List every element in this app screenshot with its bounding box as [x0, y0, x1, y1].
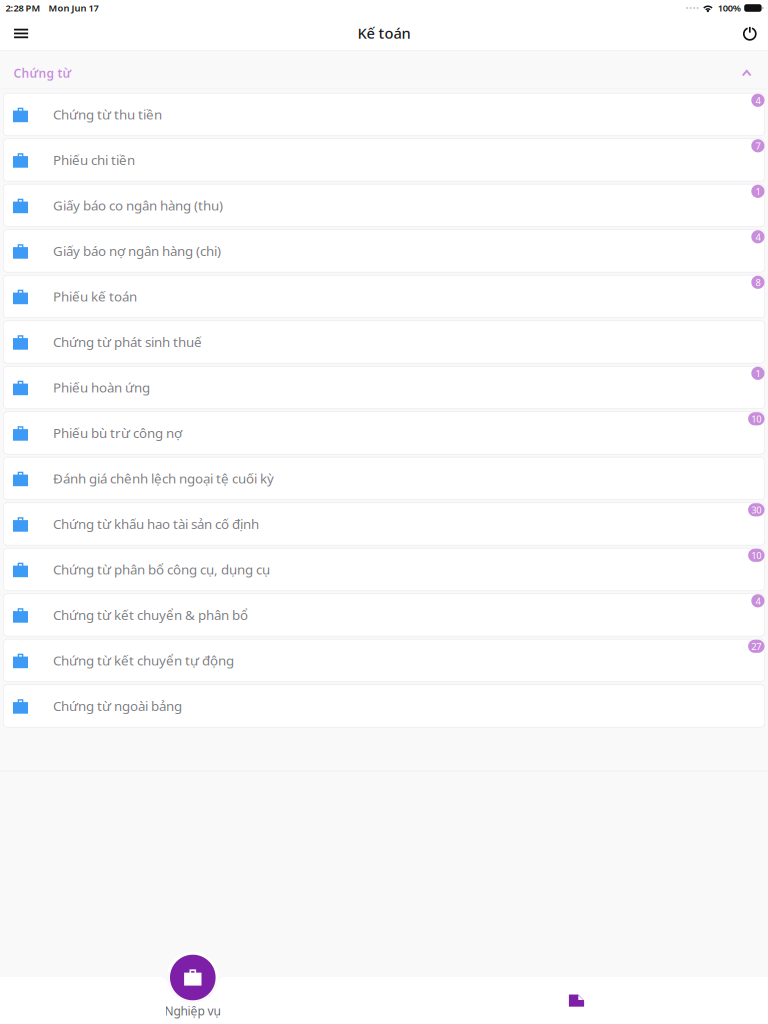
staticText: 4	[755, 595, 760, 607]
staticText: 10	[751, 413, 761, 425]
button[interactable]: Power	[733, 16, 767, 50]
staticText: 4	[755, 94, 760, 106]
button[interactable]: Chứng từ	[0, 51, 768, 89]
staticText: Phiếu hoàn ứng	[53, 379, 150, 396]
button[interactable]: Chứng từ phát sinh thuế	[3, 321, 764, 363]
button[interactable]: Đánh giá chênh lệch ngoại tệ cuối kỳ	[3, 457, 764, 500]
staticText: Kế toán	[357, 23, 410, 43]
staticText: Giấy báo nợ ngân hàng (chi)	[53, 242, 221, 260]
button[interactable]: Tài liệu	[385, 956, 768, 1024]
staticText: 30	[751, 504, 761, 516]
button[interactable]: Phiếu chi tiền	[3, 139, 764, 181]
button[interactable]: Nghiệp vụ	[170, 955, 216, 1000]
button[interactable]: Chứng từ thu tiền	[3, 93, 764, 136]
staticText: Đánh giá chênh lệch ngoại tệ cuối kỳ	[53, 470, 274, 487]
staticText: Chứng từ thu tiền	[53, 106, 162, 123]
button[interactable]: Chứng từ phân bổ công cụ, dụng cụ	[3, 548, 764, 591]
button[interactable]: Chứng từ ngoài bảng	[3, 685, 764, 727]
staticText: Chứng từ kết chuyển & phân bổ	[53, 606, 248, 624]
button[interactable]: Menu	[4, 16, 38, 50]
staticText: 1	[755, 185, 760, 197]
button[interactable]: Phiếu kế toán	[3, 275, 764, 318]
staticText: 100%	[718, 2, 741, 14]
staticText: 1	[755, 367, 760, 379]
staticText: Phiếu bù trừ công nợ	[53, 424, 182, 442]
button[interactable]: Chứng từ kết chuyển tự động	[3, 639, 764, 682]
staticText: Chứng từ phát sinh thuế	[53, 333, 202, 351]
staticText: Giấy báo co ngân hàng (thu)	[53, 197, 223, 214]
staticText: 7	[755, 140, 760, 152]
staticText: Chứng từ ngoài bảng	[53, 697, 182, 715]
staticText: 27	[751, 640, 761, 652]
staticText: Mon Jun 17	[48, 2, 98, 14]
button[interactable]: Giấy báo co ngân hàng (thu)	[3, 184, 764, 227]
button[interactable]: Chứng từ kết chuyển & phân bổ	[3, 594, 764, 636]
staticText: 8	[755, 276, 760, 288]
button[interactable]: Giấy báo nợ ngân hàng (chi)	[3, 230, 764, 272]
staticText: Nghiệp vụ	[164, 1003, 220, 1019]
staticText: Phiếu chi tiền	[53, 151, 135, 169]
staticText: Phiếu kế toán	[53, 288, 137, 305]
staticText: Chứng từ	[13, 65, 71, 81]
button[interactable]: Phiếu hoàn ứng	[3, 366, 764, 409]
staticText: 2:28 PM	[5, 2, 40, 14]
staticText: Chứng từ khấu hao tài sản cố định	[53, 515, 259, 533]
staticText: Chứng từ kết chuyển tự động	[53, 652, 234, 669]
staticText: 4	[755, 231, 760, 243]
button[interactable]: Nghiệp vụ	[0, 956, 385, 1024]
button[interactable]: Chứng từ khấu hao tài sản cố định	[3, 503, 764, 545]
button[interactable]: Phiếu bù trừ công nợ	[3, 412, 764, 454]
staticText: 10	[751, 549, 761, 561]
staticText: Chứng từ phân bổ công cụ, dụng cụ	[53, 561, 270, 578]
